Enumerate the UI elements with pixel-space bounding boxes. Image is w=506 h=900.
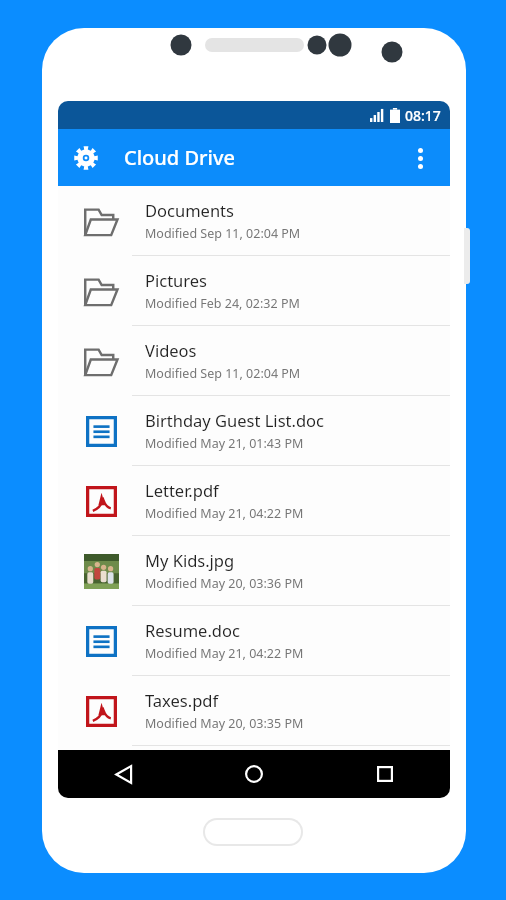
staticText: Documents: [145, 199, 234, 221]
button[interactable]: More options: [398, 136, 442, 180]
button[interactable]: Back: [58, 750, 188, 798]
button[interactable]: Recents: [319, 750, 450, 798]
staticText: Modified Sep 11, 02:04 PM: [145, 225, 301, 242]
button[interactable]: Documents: [58, 186, 450, 255]
staticText: Pictures: [145, 269, 208, 291]
staticText: Videos: [145, 339, 197, 361]
staticText: Letter.pdf: [145, 479, 219, 501]
staticText: Modified May 21, 01:43 PM: [145, 435, 304, 452]
staticText: Taxes.pdf: [145, 689, 219, 711]
staticText: Resume.doc: [145, 619, 240, 641]
staticText: Modified May 21, 04:22 PM: [145, 505, 304, 522]
button[interactable]: Taxes.pdf: [58, 676, 450, 745]
button[interactable]: Videos: [58, 326, 450, 395]
button[interactable]: Settings: [64, 136, 108, 180]
staticText: Cloud Drive: [124, 144, 235, 171]
staticText: Modified May 20, 03:35 PM: [145, 715, 304, 732]
staticText: Modified Feb 24, 02:32 PM: [145, 295, 300, 312]
staticText: Modified May 20, 03:36 PM: [145, 575, 304, 592]
staticText: 08:17: [405, 106, 441, 125]
button[interactable]: Resume.doc: [58, 606, 450, 675]
button[interactable]: Home: [188, 750, 319, 798]
button[interactable]: My Kids.jpg: [58, 536, 450, 605]
staticText: Modified Sep 11, 02:04 PM: [145, 365, 301, 382]
button[interactable]: Birthday Guest List.doc: [58, 396, 450, 465]
staticText: Birthday Guest List.doc: [145, 409, 324, 431]
button[interactable]: Pictures: [58, 256, 450, 325]
staticText: My Kids.jpg: [145, 549, 235, 571]
button[interactable]: Letter.pdf: [58, 466, 450, 535]
staticText: Modified May 21, 04:22 PM: [145, 645, 304, 662]
